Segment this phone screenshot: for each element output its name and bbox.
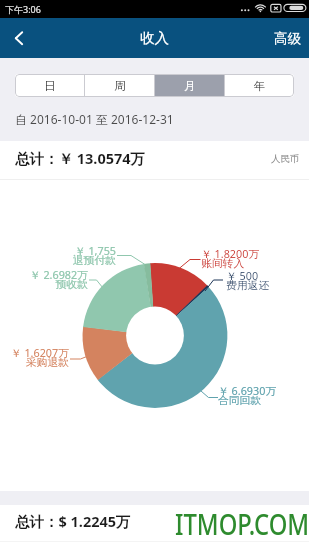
staticText: 采购退款 [25,356,69,370]
button[interactable]: Back [0,18,40,58]
button[interactable]: 周 [85,74,154,97]
button[interactable]: 月 [155,74,224,97]
staticText: ￥ 500 [226,268,259,283]
button[interactable]: 年 [225,74,294,97]
staticText: 收入 [140,29,169,47]
staticText: 月 [184,79,196,93]
staticText: 账间转入 [201,257,245,271]
staticText: 下午3:06 [5,3,41,15]
staticText: 预收款 [55,278,88,292]
staticText: 退预付款 [72,254,116,268]
staticText: ￥ 1.8200万 [201,246,260,261]
staticText: 周 [114,79,126,93]
staticText: 日 [44,79,56,93]
staticText: ￥ 1.6207万 [10,345,69,360]
button[interactable]: 高级 [266,22,309,55]
staticText: 年 [254,79,266,93]
staticText: ￥ 6.6930万 [218,383,277,398]
staticText: 总计：￥ 13.0574万 [15,148,146,168]
staticText: ￥ 2.6982万 [29,267,88,282]
staticText: ITMOP.COM [175,505,309,543]
staticText: 人民币 [271,153,300,165]
staticText: 费用返还 [226,279,270,293]
staticText: 自 2016-10-01 至 2016-12-31 [15,111,174,127]
staticText: 高级 [274,30,301,47]
other: Status icons [235,0,309,18]
staticText: ￥ 1,755 [74,243,116,258]
staticText: 合同回款 [218,394,262,408]
button[interactable]: 日 [15,74,84,97]
staticText: 总计：$ 1.2245万 [15,511,131,531]
